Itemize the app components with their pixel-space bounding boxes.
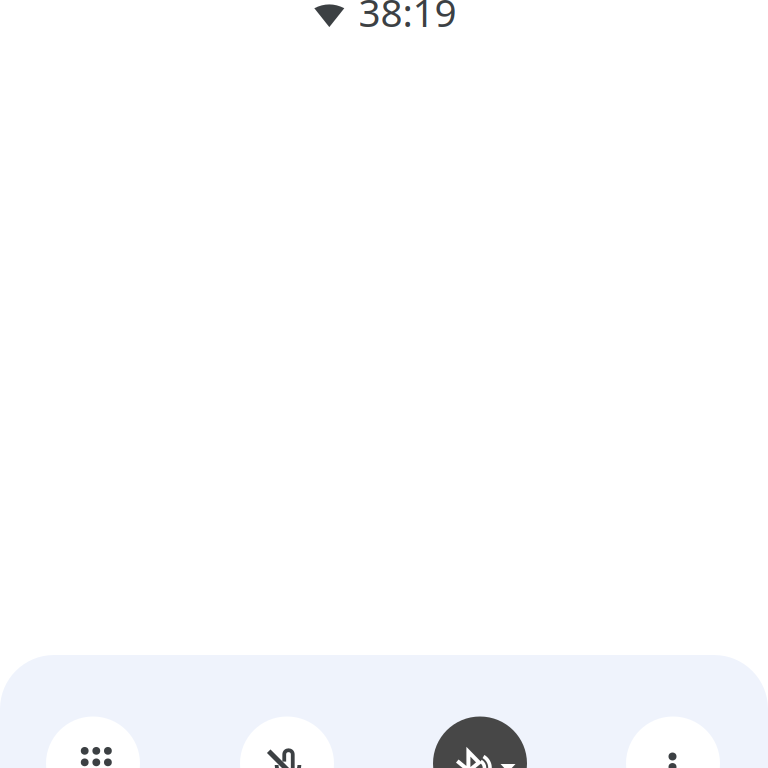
button[interactable]: Audio output: [433, 716, 527, 768]
button[interactable]: More options: [626, 716, 720, 768]
button[interactable]: Unmute microphone: [240, 716, 334, 768]
staticText: 38:19: [358, 0, 456, 38]
button[interactable]: Show everyone: [46, 716, 140, 768]
